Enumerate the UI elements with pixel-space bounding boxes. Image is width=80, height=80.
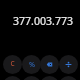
button[interactable]: Divide bbox=[59, 55, 78, 74]
button[interactable]: Eight bbox=[22, 76, 41, 80]
button[interactable]: Seven bbox=[3, 76, 22, 80]
staticText: % bbox=[29, 59, 35, 69]
button[interactable]: Multiply bbox=[59, 76, 78, 80]
button[interactable]: Nine bbox=[40, 76, 59, 80]
button[interactable]: Backspace bbox=[40, 55, 59, 74]
staticText: C bbox=[10, 59, 15, 68]
button[interactable]: Clear bbox=[3, 55, 22, 74]
staticText: 377.003.773 bbox=[5, 14, 80, 28]
button[interactable]: Percent bbox=[22, 55, 41, 74]
